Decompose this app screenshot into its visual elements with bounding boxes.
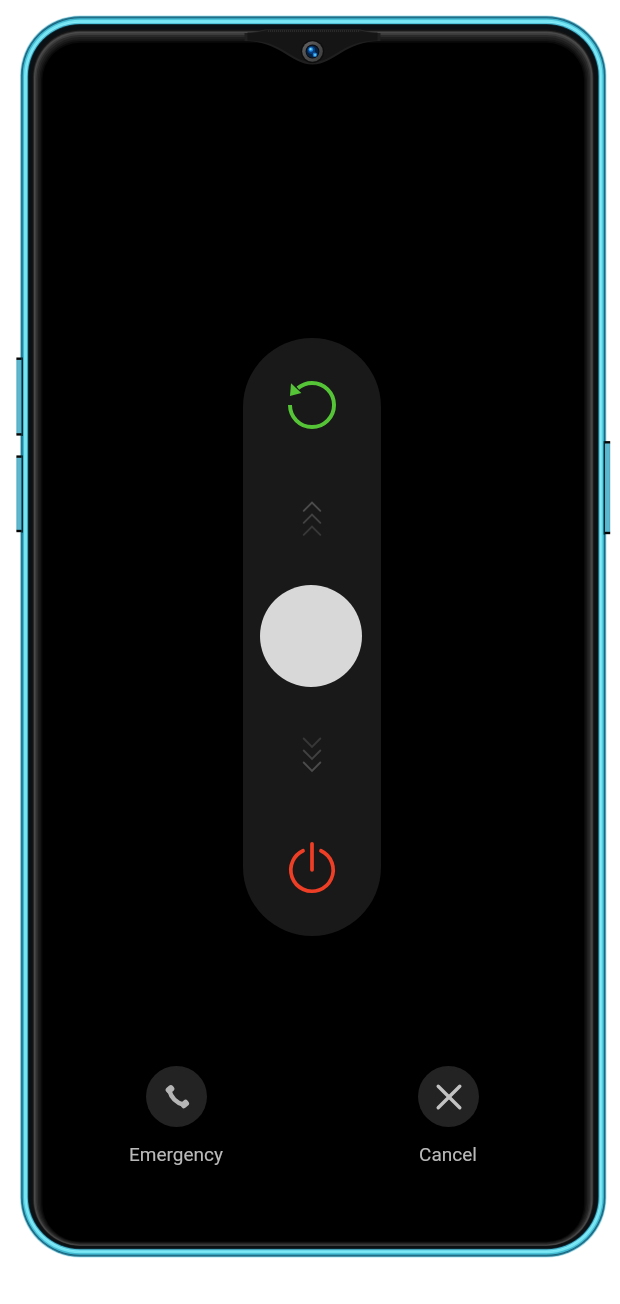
other: Cancel: [418, 1066, 479, 1127]
button[interactable]: Emergency: [106, 1066, 246, 1165]
button[interactable]: Cancel: [378, 1066, 518, 1165]
button[interactable]: Restart: [278, 371, 346, 439]
button[interactable]: Power off: [278, 836, 346, 904]
staticText: Cancel: [378, 1143, 518, 1165]
staticText: Emergency: [106, 1143, 246, 1165]
other: Emergency: [146, 1066, 207, 1127]
button[interactable]: Slider handle: [260, 585, 362, 687]
